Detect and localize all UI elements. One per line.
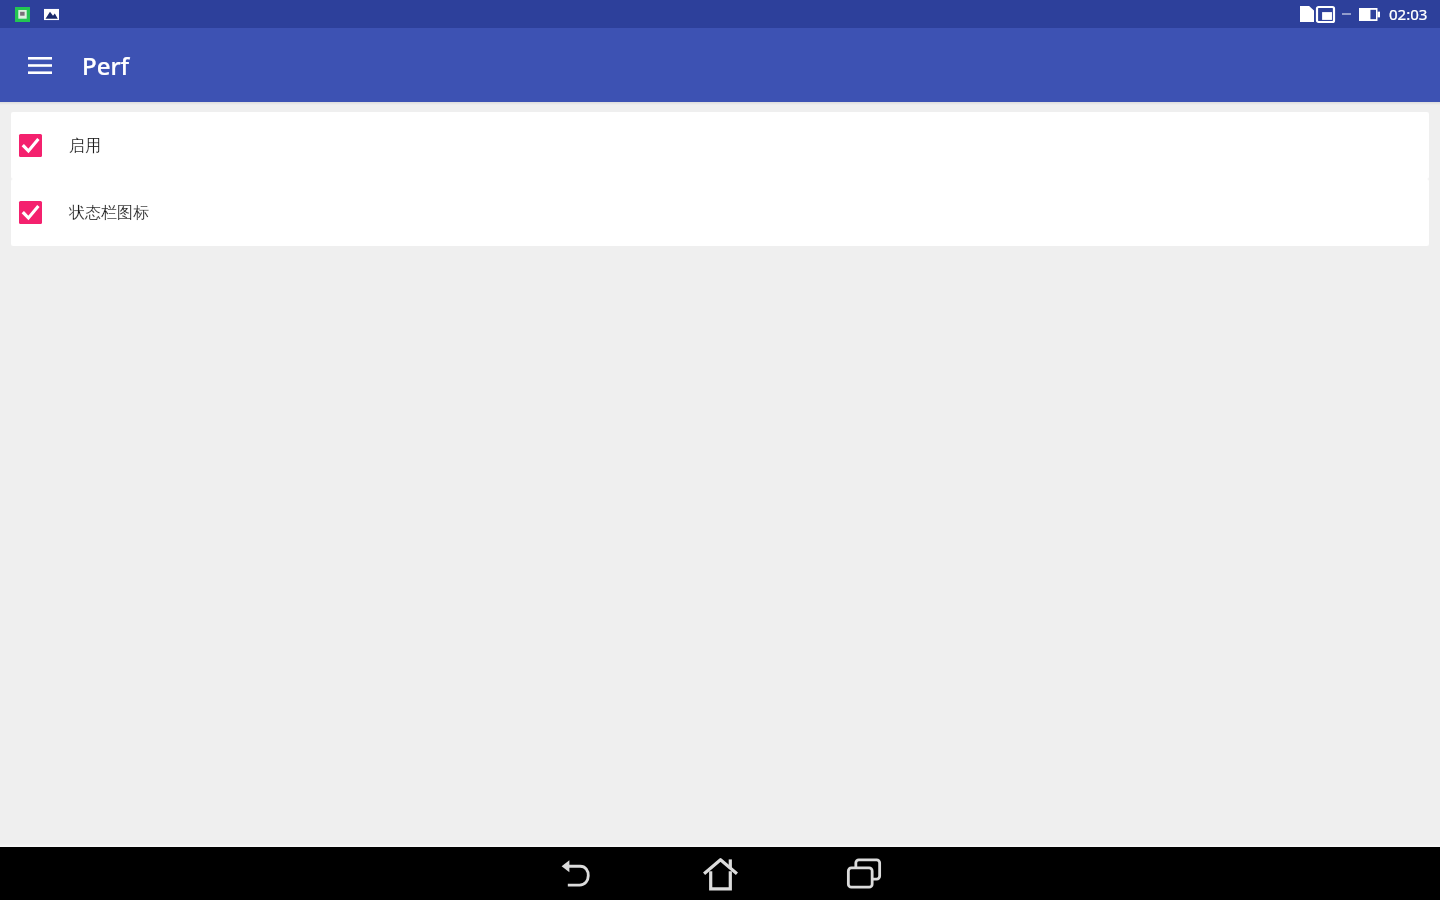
staticText: Perf bbox=[82, 49, 130, 82]
button[interactable]: Open navigation menu bbox=[17, 42, 63, 88]
button[interactable]: 启用 bbox=[11, 112, 1429, 179]
staticText: 启用 bbox=[69, 136, 101, 156]
button[interactable]: Back bbox=[504, 847, 648, 900]
button[interactable]: 状态栏图标 bbox=[11, 179, 1429, 246]
button[interactable]: Recent apps bbox=[792, 847, 936, 900]
staticText: 02:03 bbox=[1389, 4, 1428, 24]
button[interactable]: Home bbox=[648, 847, 792, 900]
staticText: 状态栏图标 bbox=[69, 203, 149, 223]
